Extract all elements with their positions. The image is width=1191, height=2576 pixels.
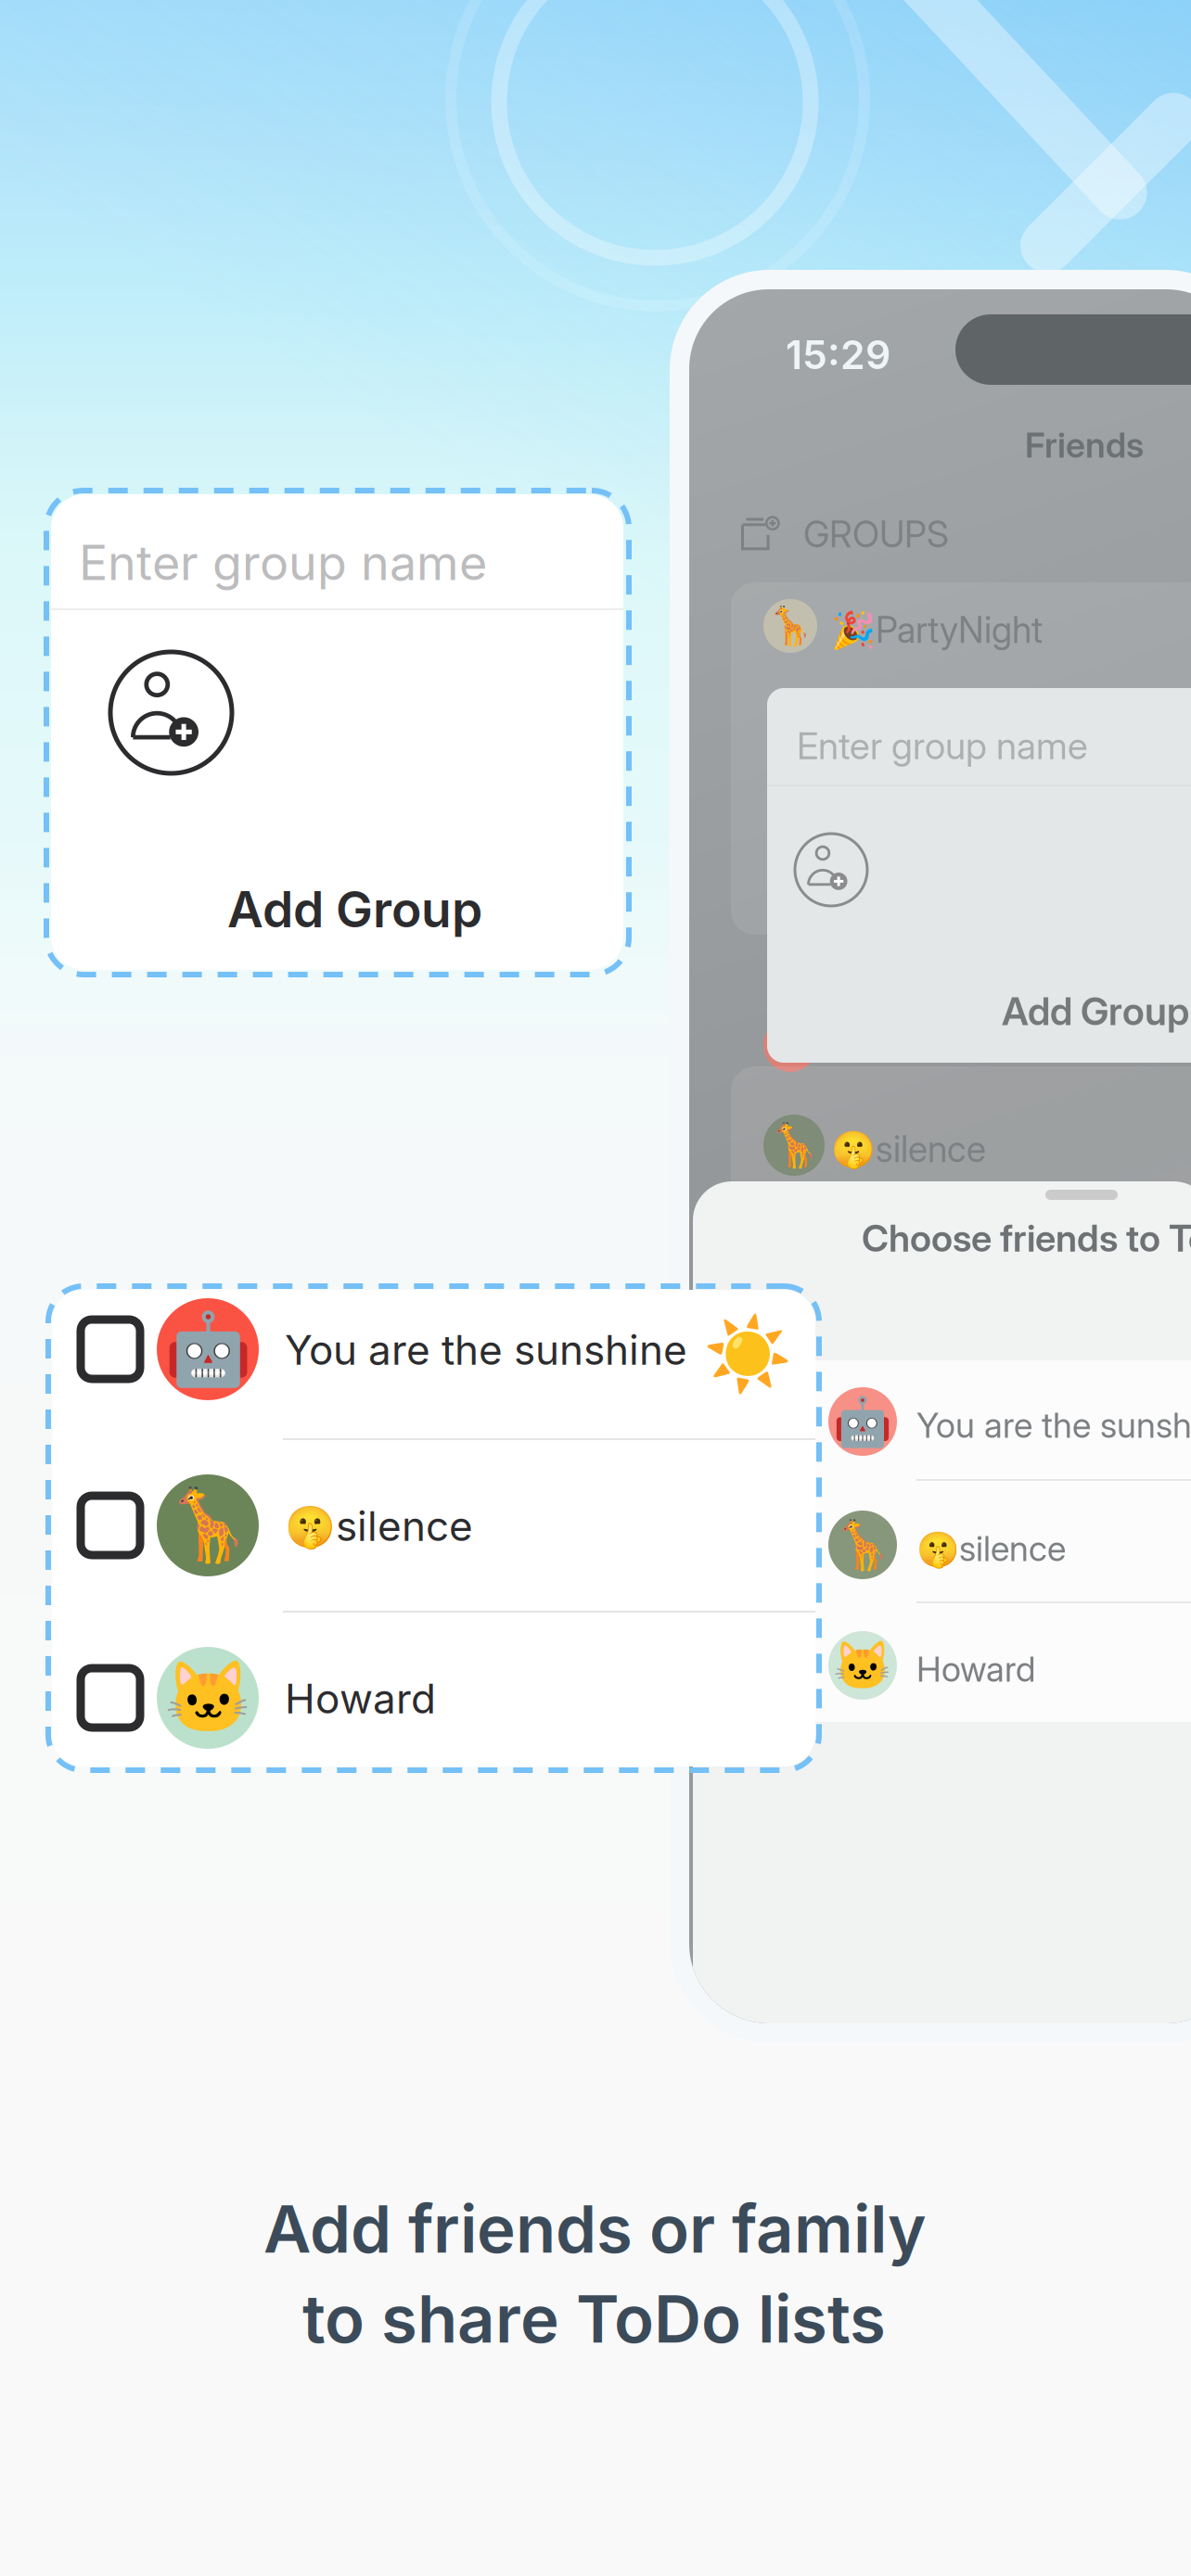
staticText: 🦒 — [833, 1517, 892, 1573]
button[interactable]: Enter group name — [51, 494, 623, 970]
staticText: ☀️ — [703, 1312, 792, 1396]
staticText: 🤖 — [164, 1308, 252, 1391]
staticText: Choose friends to ToDo — [862, 1216, 1191, 1261]
staticText: 🤫silence — [285, 1501, 473, 1551]
staticText: Add friends or family — [263, 2189, 927, 2268]
staticText: Enter group name — [797, 723, 1088, 768]
staticText: Friends — [1025, 424, 1144, 466]
staticText: 🐱 — [164, 1656, 252, 1739]
staticText: You are the sunshine — [285, 1325, 687, 1375]
staticText: 🤫silence — [831, 1127, 986, 1171]
button[interactable]: 🦒 — [52, 1290, 815, 1449]
staticText: to share ToDo lists — [302, 2279, 886, 2358]
staticText: 🎉PartyNight — [831, 608, 1043, 652]
staticText: 🦒 — [768, 1120, 820, 1170]
button[interactable]: 🐱 — [52, 1290, 815, 1449]
staticText: Add Group — [227, 879, 482, 939]
staticText: 15:29 — [786, 331, 890, 379]
staticText: Add Group — [1002, 988, 1189, 1034]
staticText: You are the sunshine ☀️ — [916, 1404, 1191, 1446]
staticText: 🐱 — [833, 1637, 892, 1693]
staticText: 🦒 — [767, 604, 813, 648]
staticText: Howard — [916, 1648, 1035, 1690]
staticText: 🤫silence — [916, 1528, 1066, 1570]
staticText: 🦒 — [164, 1484, 252, 1567]
staticText: 🤖 — [833, 1394, 892, 1449]
staticText: Howard — [285, 1674, 436, 1723]
button[interactable]: 🤖 — [52, 1290, 815, 1449]
staticText: Enter group name — [79, 533, 487, 592]
staticText: GROUPS — [803, 513, 949, 556]
